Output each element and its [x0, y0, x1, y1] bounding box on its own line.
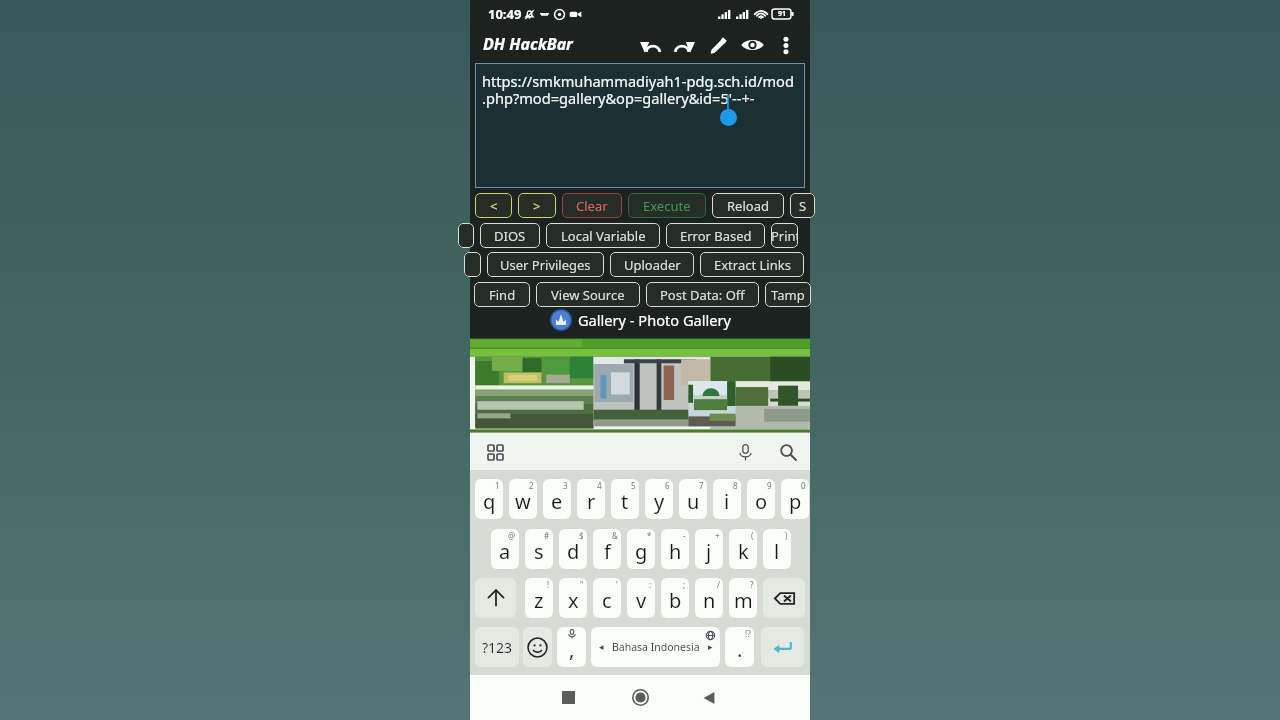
staticText: & — [612, 530, 618, 541]
staticText: Print — [771, 227, 798, 245]
staticText: Post Data: Off — [660, 286, 745, 304]
button[interactable]: Keyboard menu — [482, 439, 508, 465]
button[interactable]: Redo — [667, 28, 701, 62]
button[interactable]: f — [593, 529, 621, 569]
button[interactable]: j — [695, 529, 723, 569]
button[interactable]: Gallery web page — [470, 336, 810, 433]
button[interactable]: Print — [771, 223, 798, 248]
staticText: Tamp — [771, 286, 805, 304]
button[interactable]: . — [725, 627, 754, 667]
button[interactable]: d — [559, 529, 587, 569]
button[interactable]: View Source — [536, 282, 640, 307]
button[interactable]: Backspace — [763, 578, 805, 618]
button[interactable]: k — [729, 529, 757, 569]
button[interactable]: c — [593, 578, 621, 618]
button[interactable]: https://smkmuhammadiyah1-pdg.sch.id/mod … — [475, 63, 805, 188]
staticText: DIOS — [494, 227, 526, 245]
button[interactable]: q — [475, 479, 503, 519]
button[interactable]: Search — [774, 438, 802, 466]
staticText: + — [715, 530, 720, 541]
staticText: b — [669, 587, 682, 614]
staticText: u — [687, 488, 700, 515]
button[interactable]: Tamp — [765, 282, 811, 307]
staticText: ◂ — [599, 642, 604, 652]
button[interactable]: t — [611, 479, 639, 519]
button[interactable]: ?123 — [475, 627, 519, 667]
staticText: g — [635, 538, 648, 565]
button[interactable]: m — [729, 578, 757, 618]
button[interactable]: u — [679, 479, 707, 519]
staticText: p — [789, 488, 802, 515]
staticText: - — [683, 530, 686, 541]
button[interactable]: Undo — [633, 28, 667, 62]
button[interactable]: Reload — [712, 193, 784, 218]
button[interactable]: Gallery - Photo Gallery — [470, 305, 810, 334]
button[interactable]: y — [645, 479, 673, 519]
button[interactable]: e — [543, 479, 571, 519]
button[interactable]: b — [661, 578, 689, 618]
button[interactable]: Post Data: Off — [646, 282, 759, 307]
button[interactable]: More options — [769, 28, 803, 62]
staticText: o — [755, 488, 768, 515]
staticText: ?123 — [482, 638, 513, 657]
staticText: , — [569, 636, 575, 663]
button[interactable]: Home — [615, 675, 665, 720]
button[interactable]: Enter — [761, 627, 804, 667]
button[interactable]: Voice input — [731, 438, 759, 466]
button[interactable] — [458, 223, 474, 248]
button[interactable]: o — [747, 479, 775, 519]
button[interactable]: Execute — [628, 193, 706, 218]
staticText: ! — [547, 579, 550, 590]
button[interactable]: Extract Links — [700, 252, 804, 277]
button[interactable]: w — [509, 479, 537, 519]
button[interactable]: Clear — [562, 193, 622, 218]
button[interactable]: Space — [591, 627, 720, 667]
button[interactable]: g — [627, 529, 655, 569]
button[interactable]: Find — [474, 282, 530, 307]
staticText: View Source — [551, 286, 625, 304]
button[interactable]: Preview — [735, 28, 769, 62]
button[interactable]: v — [627, 578, 655, 618]
staticText: Local Variable — [561, 227, 646, 245]
button[interactable]: Back — [684, 675, 734, 720]
staticText: * — [647, 530, 652, 541]
button[interactable]: z — [525, 578, 553, 618]
button[interactable]: l — [763, 529, 791, 569]
staticText: / — [717, 579, 720, 590]
button[interactable]: Recent apps — [543, 675, 593, 720]
staticText: 0 — [801, 480, 806, 491]
button[interactable]: n — [695, 578, 723, 618]
button[interactable]: S — [790, 193, 815, 218]
button[interactable]: x — [559, 578, 587, 618]
button[interactable]: s — [525, 529, 553, 569]
button[interactable]: Emoji — [523, 627, 552, 667]
staticText: ? — [750, 579, 754, 590]
button[interactable]: DIOS — [480, 223, 540, 248]
button[interactable]: Error Based — [666, 223, 765, 248]
button[interactable]: Uploader — [610, 252, 694, 277]
button[interactable]: Local Variable — [546, 223, 660, 248]
button[interactable]: User Privileges — [487, 252, 604, 277]
button[interactable]: r — [577, 479, 605, 519]
staticText: < — [490, 197, 498, 215]
button[interactable]: , — [557, 627, 586, 667]
staticText: ▸ — [708, 642, 713, 652]
staticText: !? — [745, 628, 751, 639]
staticText: " — [580, 579, 584, 590]
button[interactable]: > — [518, 193, 556, 218]
staticText: y — [654, 488, 665, 515]
staticText: e — [551, 488, 563, 515]
button[interactable]: < — [475, 193, 512, 218]
button[interactable]: h — [661, 529, 689, 569]
button[interactable] — [464, 252, 481, 277]
button[interactable]: Edit — [701, 28, 735, 62]
button[interactable]: p — [781, 479, 809, 519]
staticText: a — [499, 538, 511, 565]
staticText: r — [587, 488, 596, 515]
button[interactable]: i — [713, 479, 741, 519]
staticText: 2 — [529, 480, 534, 491]
button[interactable]: Shift — [475, 578, 516, 618]
staticText: ; — [683, 579, 686, 590]
staticText: $ — [579, 530, 584, 541]
button[interactable]: a — [491, 529, 519, 569]
